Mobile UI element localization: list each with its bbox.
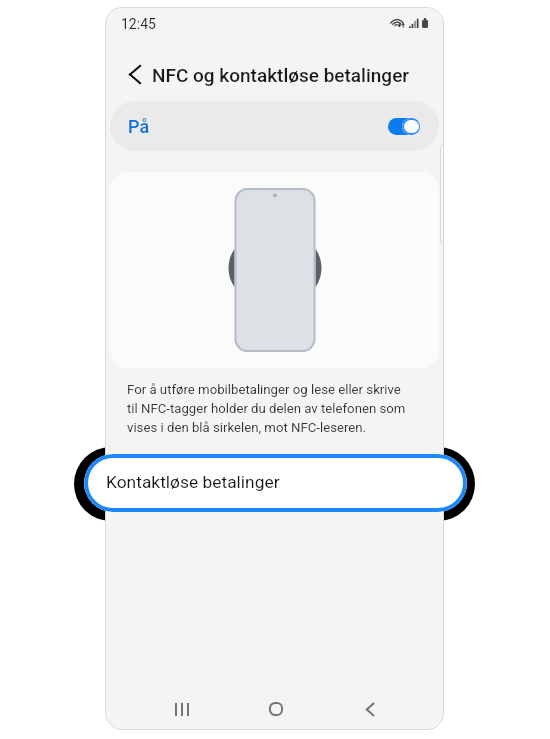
button[interactable]: Back: [345, 689, 395, 729]
button[interactable]: Back: [119, 58, 151, 90]
button[interactable]: Home: [251, 689, 301, 729]
button[interactable]: På: [110, 101, 439, 151]
staticText: NFC og kontaktløse betalinger: [152, 64, 410, 86]
staticText: 12:45: [121, 16, 156, 32]
button[interactable]: Kontaktløse betalinger: [84, 454, 467, 512]
button[interactable]: Recent apps: [157, 689, 207, 729]
staticText: På: [128, 116, 150, 137]
staticText: Kontaktløse betalinger: [106, 472, 280, 492]
staticText: For å utføre mobilbetalinger og lese ell…: [127, 382, 412, 435]
